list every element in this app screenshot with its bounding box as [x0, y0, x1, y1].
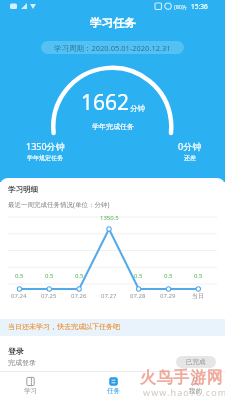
staticText: www.hao76.com — [143, 386, 225, 398]
staticText: 15:36 — [191, 2, 208, 11]
staticText: 最近一周完成任务情况(单位：分钟) — [8, 200, 110, 209]
staticText: (80)ϟ — [174, 3, 187, 10]
staticText: 0.5 — [164, 272, 173, 280]
staticText: 07.26 — [71, 292, 87, 300]
staticText: 07.24 — [11, 292, 27, 300]
staticText: 0.5 — [45, 272, 54, 280]
staticText: 分钟 — [130, 104, 145, 113]
staticText: 0.5 — [134, 272, 143, 280]
staticText: 1350分钟 — [26, 140, 65, 152]
staticText: 1350.5 — [100, 214, 119, 222]
button[interactable]: 任务 — [95, 372, 131, 395]
staticText: 当日 — [192, 292, 204, 300]
staticText: 学习任务 — [90, 16, 136, 30]
staticText: 1662 — [81, 88, 130, 117]
staticText: 学习明细 — [8, 185, 38, 194]
staticText: 0分钟 — [178, 140, 202, 152]
staticText: 07.28 — [130, 292, 146, 300]
staticText: 学习 — [24, 387, 37, 395]
staticText: 任务 — [107, 387, 120, 395]
staticText: 登录 — [8, 346, 24, 356]
staticText: 学年规定任务 — [27, 154, 63, 162]
staticText: 0.5 — [194, 272, 203, 280]
staticText: 0.5 — [75, 272, 84, 280]
staticText: 我的 — [189, 387, 202, 395]
staticText: 07.25 — [41, 292, 57, 300]
staticText: 07.29 — [160, 292, 176, 300]
staticText: 火鸟手游网 — [140, 368, 224, 388]
staticText: 当日还未学习，快去完成以下任务吧 — [8, 322, 120, 331]
button[interactable]: 学习 — [12, 372, 48, 395]
staticText: 07.27 — [101, 292, 117, 300]
button[interactable]: 已完成 — [176, 356, 216, 368]
button[interactable]: 我的 — [177, 372, 213, 395]
staticText: 完成登录 — [8, 358, 36, 367]
staticText: 学年完成任务 — [92, 122, 134, 131]
staticText: 0.5 — [15, 272, 24, 280]
staticText: 学习周期：2020.05.01-2020.12.31 — [54, 43, 171, 53]
staticText: 已完成 — [186, 358, 206, 366]
staticText: 还差 — [184, 154, 196, 162]
